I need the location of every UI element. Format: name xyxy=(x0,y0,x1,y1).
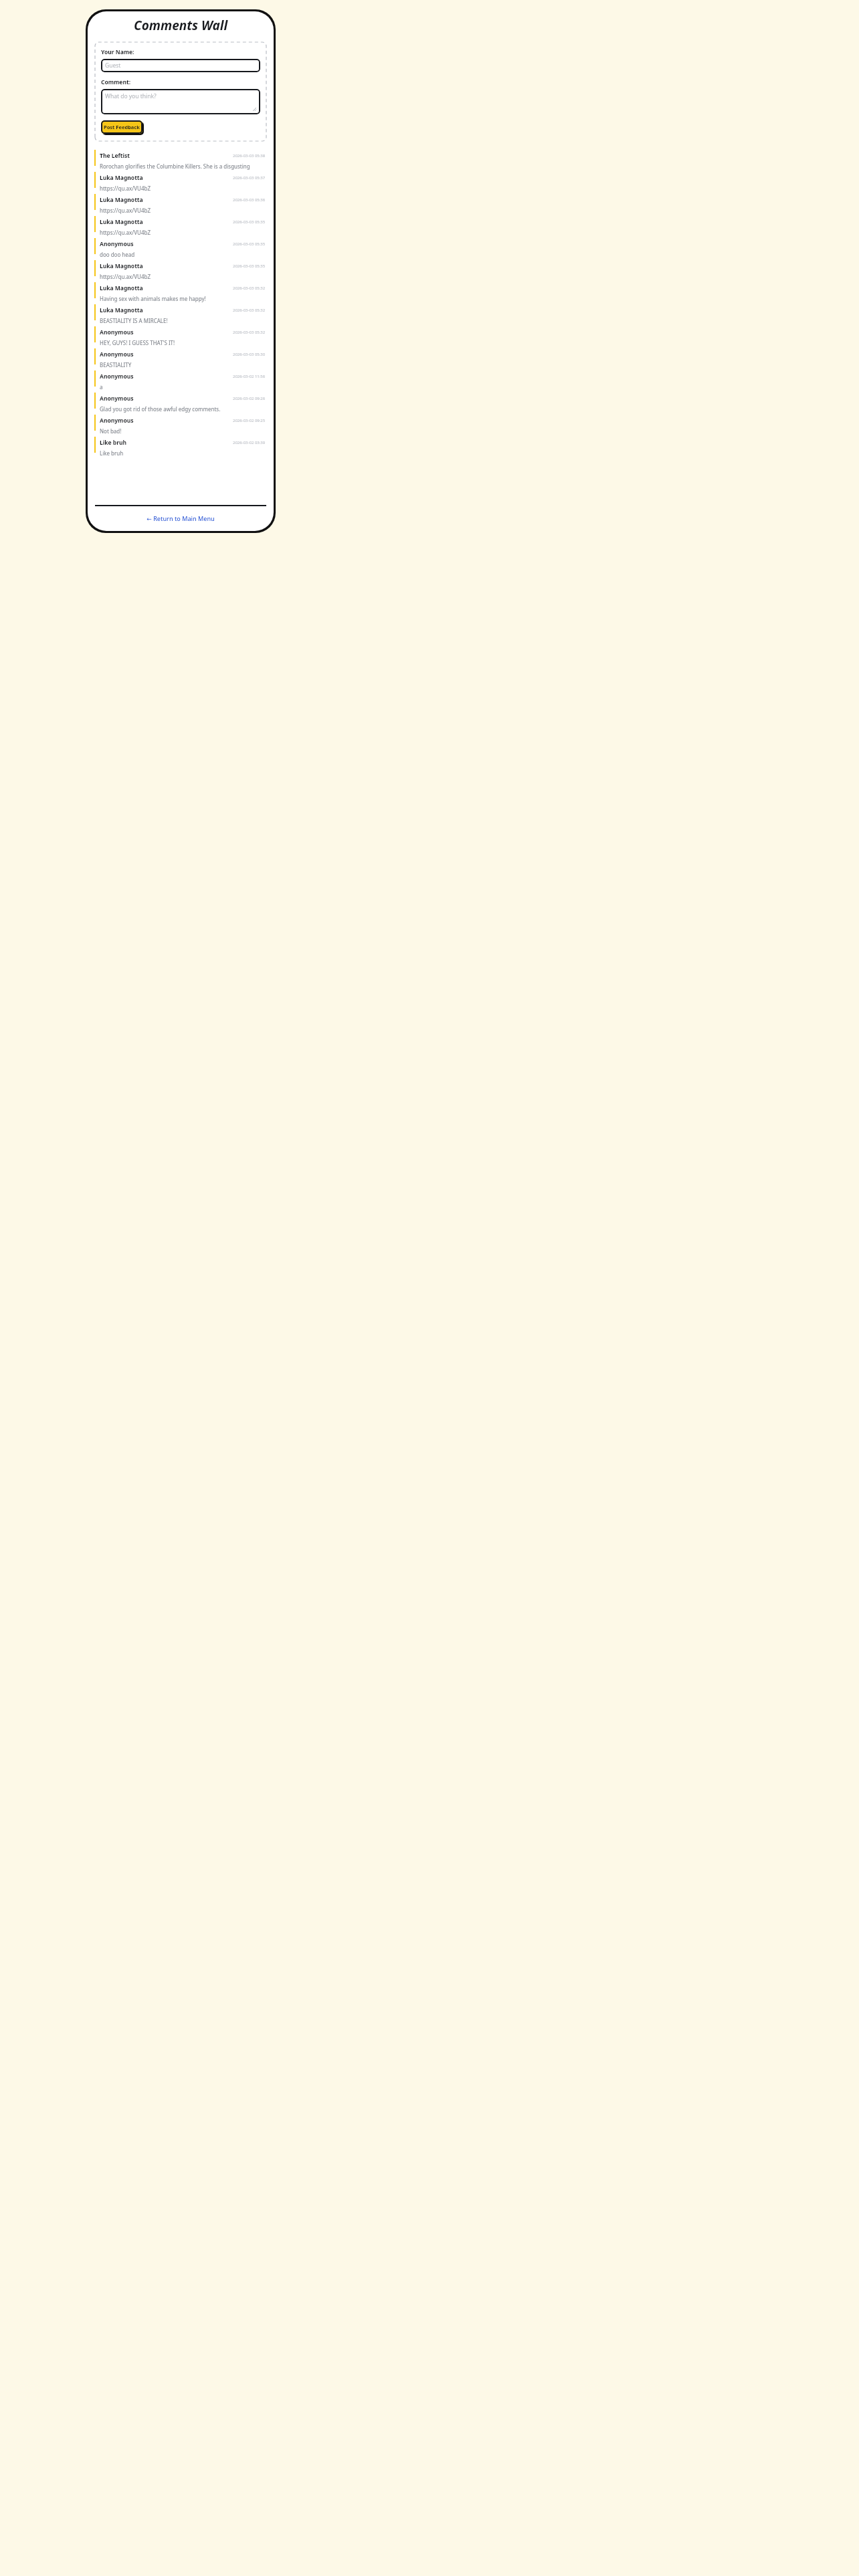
staticText: 2026-03-02 09:26 xyxy=(233,396,266,401)
button[interactable]: Luka Magnotta xyxy=(88,302,274,324)
button[interactable]: Guest xyxy=(101,59,260,72)
button[interactable]: Luka Magnotta xyxy=(88,214,274,236)
staticText: Glad you got rid of those awful edgy com… xyxy=(100,405,221,413)
button[interactable]: Post Feedback xyxy=(101,120,142,134)
button[interactable]: Anonymous xyxy=(88,391,274,413)
button[interactable]: Anonymous xyxy=(88,324,274,346)
staticText: 2026-03-03 05:38 xyxy=(233,153,266,158)
staticText: Anonymous xyxy=(100,417,134,425)
staticText: Having sex with animals makes me happy! xyxy=(100,295,206,302)
staticText: Not bad! xyxy=(100,427,122,435)
staticText: 2026-03-03 05:35 xyxy=(233,219,266,225)
staticText: Anonymous xyxy=(100,350,134,358)
staticText: Rorochan glorifies the Columbine Killers… xyxy=(100,163,266,170)
staticText: 2026-03-03 05:36 xyxy=(233,197,266,203)
staticText: The Leftist xyxy=(100,152,130,160)
staticText: 2026-03-03 05:37 xyxy=(233,175,266,181)
staticText: 2026-03-03 05:30 xyxy=(233,352,266,357)
button[interactable]: Luka Magnotta xyxy=(88,170,274,192)
staticText: Luka Magnotta xyxy=(100,306,143,314)
button[interactable]: Luka Magnotta xyxy=(88,258,274,280)
staticText: doo doo head xyxy=(100,251,135,258)
staticText: 2026-03-03 05:32 xyxy=(233,286,266,291)
button[interactable]: Luka Magnotta xyxy=(88,280,274,302)
staticText: BEASTIALITY xyxy=(100,361,132,368)
staticText: Guest xyxy=(105,62,121,70)
staticText: https://qu.ax/VU4bZ xyxy=(100,185,151,192)
staticText: Like bruh xyxy=(100,449,124,457)
button[interactable]: Anonymous xyxy=(88,368,274,391)
staticText: Luka Magnotta xyxy=(100,196,143,204)
button[interactable]: Like bruh xyxy=(88,435,274,457)
staticText: What do you think? xyxy=(105,92,157,100)
staticText: https://qu.ax/VU4bZ xyxy=(100,207,151,214)
staticText: Luka Magnotta xyxy=(100,284,143,292)
staticText: 2026-03-03 05:32 xyxy=(233,330,266,335)
staticText: 2026-03-03 05:35 xyxy=(233,241,266,247)
staticText: Luka Magnotta xyxy=(100,174,143,182)
staticText: Anonymous xyxy=(100,372,134,381)
staticText: Like bruh xyxy=(100,439,127,447)
staticText: 2026-03-02 03:39 xyxy=(233,440,266,445)
staticText: Comments Wall xyxy=(134,17,228,34)
staticText: Comment: xyxy=(101,78,131,86)
staticText: HEY, GUYS! I GUESS THAT'S IT! xyxy=(100,339,175,346)
staticText: ← Return to Main Menu xyxy=(147,514,215,522)
staticText: 2026-03-02 11:56 xyxy=(233,374,266,379)
button[interactable]: The Leftist xyxy=(88,148,274,170)
staticText: BEASTIALITY IS A MIRCALE! xyxy=(100,317,168,324)
button[interactable]: Anonymous xyxy=(88,413,274,435)
staticText: https://qu.ax/VU4bZ xyxy=(100,273,151,280)
staticText: Anonymous xyxy=(100,328,134,336)
button[interactable]: ← Return to Main Menu xyxy=(88,512,274,524)
staticText: 2026-03-03 05:35 xyxy=(233,263,266,269)
button[interactable]: What do you think? xyxy=(101,89,260,114)
staticText: Your Name: xyxy=(101,48,134,56)
button[interactable]: Anonymous xyxy=(88,346,274,368)
staticText: Post Feedback xyxy=(104,124,140,130)
staticText: Luka Magnotta xyxy=(100,262,143,270)
staticText: a xyxy=(100,383,103,391)
staticText: Luka Magnotta xyxy=(100,218,143,226)
button[interactable]: Luka Magnotta xyxy=(88,192,274,214)
staticText: Anonymous xyxy=(100,240,134,248)
staticText: 2026-03-03 05:32 xyxy=(233,308,266,313)
staticText: https://qu.ax/VU4bZ xyxy=(100,229,151,236)
staticText: 2026-03-02 09:25 xyxy=(233,418,266,423)
button[interactable]: Anonymous xyxy=(88,236,274,258)
staticText: Anonymous xyxy=(100,395,134,403)
